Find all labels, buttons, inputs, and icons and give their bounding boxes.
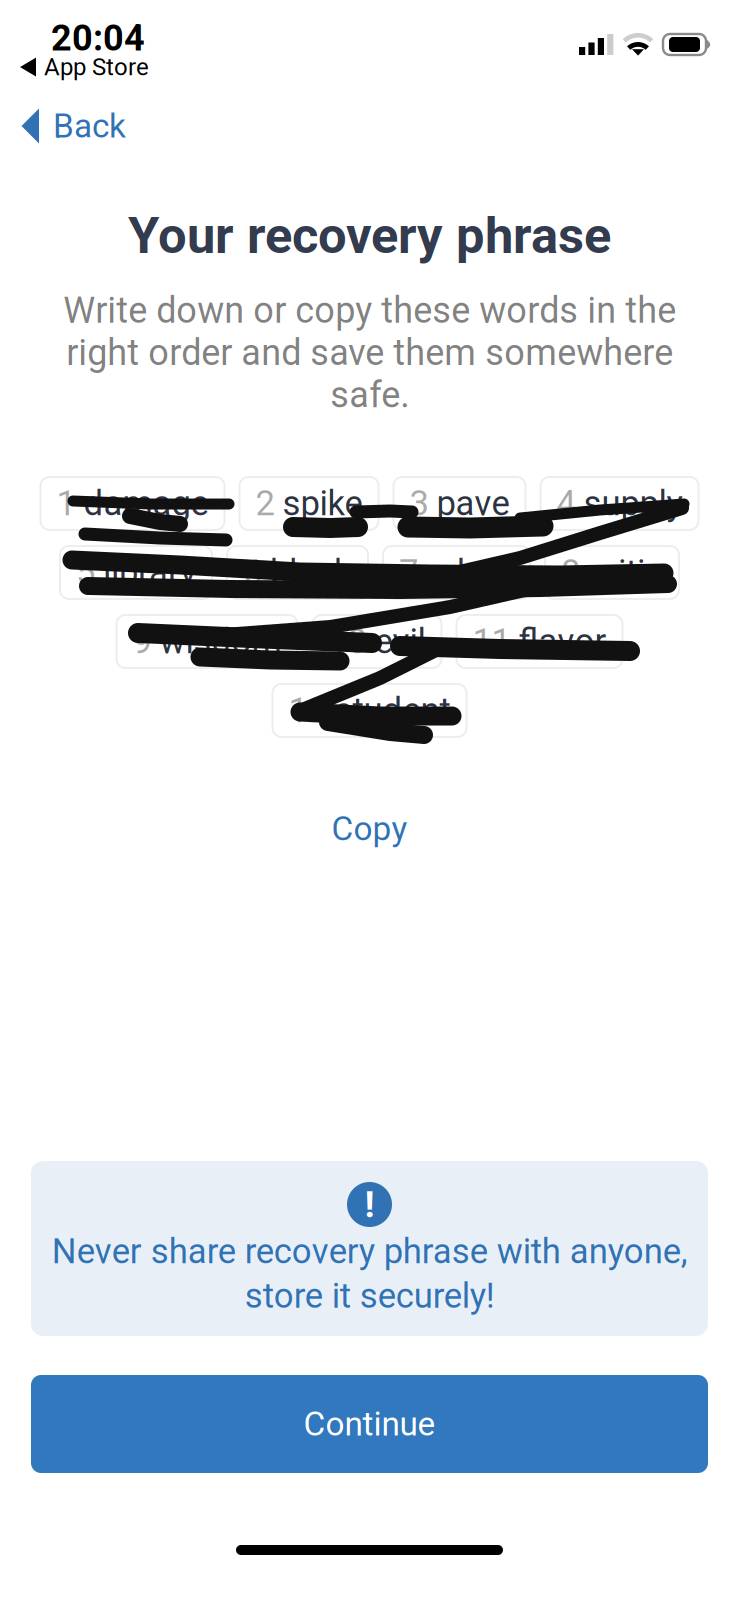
staticText: Never share recovery phrase with anyone,… [51, 1231, 687, 1316]
staticText: ! [364, 1183, 374, 1226]
staticText: 10 [328, 621, 366, 662]
button[interactable]: Back [0, 96, 126, 156]
staticText: Continue [303, 1404, 435, 1444]
staticText: critic [588, 552, 663, 593]
staticText: Write down or copy these words in the ri… [63, 289, 676, 416]
staticText: 2 [255, 483, 274, 524]
staticText: supply [583, 483, 682, 524]
staticText: pave [436, 483, 509, 524]
staticText: 9 [132, 621, 151, 662]
staticText: black [270, 552, 352, 593]
staticText: 4 [556, 483, 575, 524]
staticText: 12 [288, 690, 326, 731]
button[interactable]: Copy [0, 807, 739, 851]
staticText: urban [426, 552, 514, 593]
staticText: 5 [76, 552, 95, 593]
staticText: 11 [472, 621, 510, 662]
button[interactable]: Continue [31, 1375, 708, 1473]
staticText: 1 [56, 483, 75, 524]
staticText: flavor [518, 621, 606, 662]
staticText: 7 [399, 552, 418, 593]
staticText: spike [282, 483, 362, 524]
staticText: damage [83, 483, 208, 524]
staticText: 3 [409, 483, 428, 524]
staticText: evil [374, 621, 425, 662]
staticText: 6 [243, 552, 262, 593]
staticText: wisdom [159, 621, 281, 662]
staticText: library [103, 552, 196, 593]
staticText: Copy [331, 809, 407, 848]
staticText: 20:04 [51, 17, 145, 59]
staticText: App Store [44, 53, 149, 81]
staticText: Back [53, 106, 126, 146]
staticText: Your recovery phrase [128, 206, 611, 265]
staticText: student [334, 690, 450, 731]
staticText: 8 [561, 552, 580, 593]
